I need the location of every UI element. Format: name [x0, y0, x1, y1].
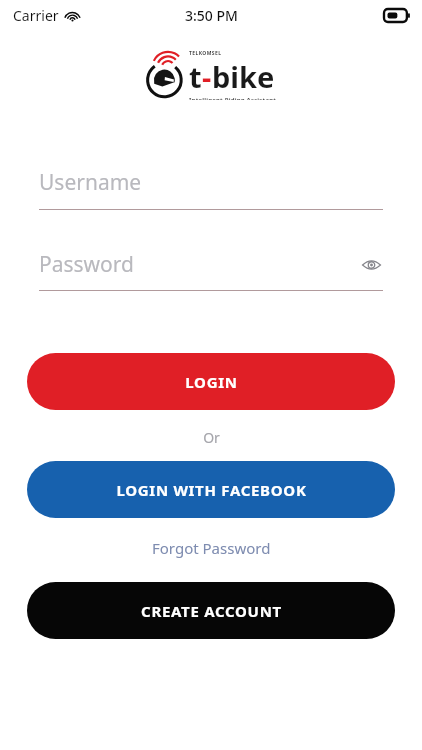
button[interactable]: Password — [39, 250, 383, 291]
button[interactable]: LOGIN — [27, 353, 395, 410]
staticText: Username — [39, 168, 142, 197]
staticText: t — [189, 57, 202, 96]
staticText: LOGIN — [185, 372, 238, 392]
button[interactable]: Show password — [359, 253, 383, 277]
staticText: CREATE ACCOUNT — [141, 601, 282, 621]
staticText: Or — [203, 428, 220, 447]
staticText: LOGIN WITH FACEBOOK — [116, 480, 307, 500]
staticText: TELKOMSEL — [189, 50, 222, 57]
staticText: Password — [39, 250, 134, 279]
button[interactable]: LOGIN WITH FACEBOOK — [27, 461, 395, 518]
staticText: Carrier — [13, 6, 59, 25]
staticText: Forgot Password — [152, 538, 271, 558]
staticText: 3:50 PM — [185, 6, 238, 25]
staticText: - — [202, 57, 212, 96]
button[interactable]: Forgot Password — [142, 534, 281, 562]
staticText: Intelligent Riding Assistant — [189, 96, 277, 100]
staticText: bike — [212, 57, 275, 96]
button[interactable]: CREATE ACCOUNT — [27, 582, 395, 639]
button[interactable]: Username — [39, 168, 383, 210]
